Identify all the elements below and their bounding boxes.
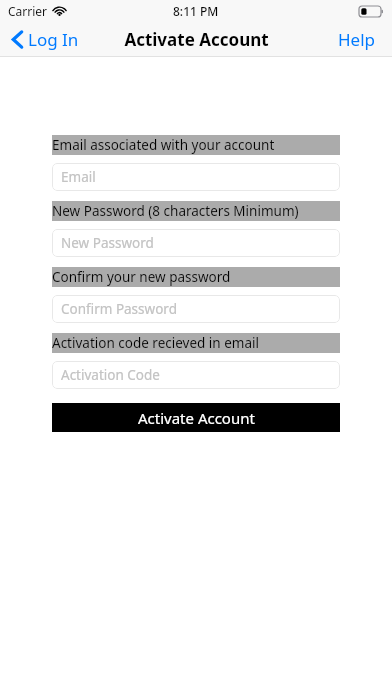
staticText: Activation Code: [61, 366, 160, 384]
staticText: Carrier: [8, 3, 48, 19]
staticText: Confirm Password: [61, 300, 177, 318]
button[interactable]: Email: [52, 163, 340, 191]
button[interactable]: New Password: [52, 229, 340, 257]
staticText: Email: [61, 168, 96, 186]
staticText: Activation code recieved in email: [52, 334, 259, 352]
button[interactable]: Activation Code: [52, 361, 340, 389]
staticText: Confirm your new password: [52, 268, 231, 286]
button[interactable]: Confirm Password: [52, 295, 340, 323]
button[interactable]: Log In: [10, 24, 81, 55]
staticText: Email associated with your account: [52, 136, 275, 154]
staticText: New Password: [61, 234, 154, 252]
staticText: New Password (8 characters Minimum): [52, 202, 299, 220]
button[interactable]: Help: [334, 22, 380, 57]
staticText: Log In: [28, 28, 79, 51]
staticText: Activate Account: [138, 408, 255, 428]
staticText: 8:11 PM: [173, 3, 219, 19]
button[interactable]: Activate Account: [52, 403, 340, 432]
staticText: Help: [338, 28, 376, 51]
staticText: Activate Account: [124, 28, 269, 51]
